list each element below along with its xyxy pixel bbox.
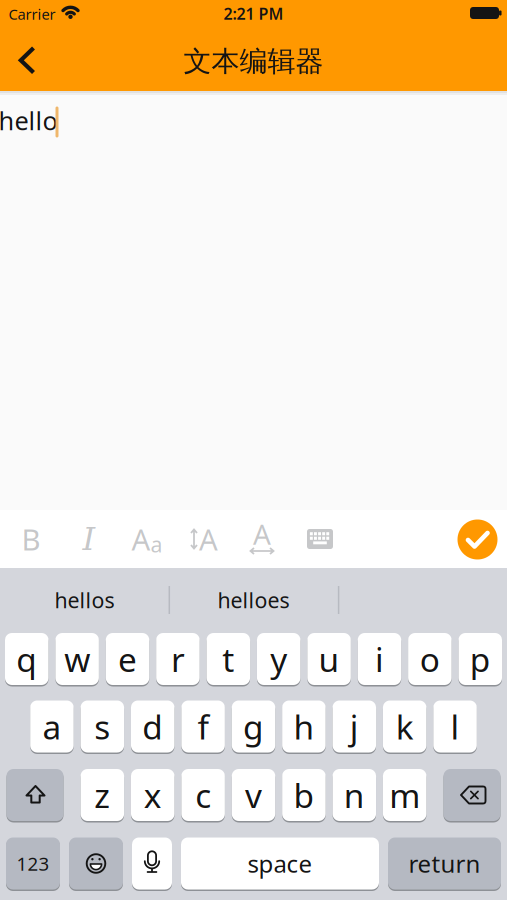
staticText: j [350,704,359,749]
staticText: A [199,519,218,558]
staticText: 文本编辑器 [183,44,323,79]
button[interactable]: c [181,769,225,821]
button[interactable]: x [131,769,174,821]
button[interactable]: f [181,700,225,752]
staticText: return [408,848,480,879]
staticText: A [131,519,150,558]
button[interactable] [132,837,172,889]
button[interactable]: A [125,515,169,563]
button[interactable]: d [131,700,174,752]
staticText: y [270,637,287,681]
staticText: s [94,704,110,749]
staticText: e [118,637,137,681]
button[interactable]: e [106,633,149,685]
staticText: v [245,773,262,817]
button[interactable]: b [282,769,326,821]
button[interactable]: m [383,769,426,821]
staticText: l [451,704,460,749]
staticText: h [293,704,314,749]
button[interactable]: A [184,515,224,563]
button[interactable]: I [69,515,109,563]
staticText: I [82,520,95,558]
staticText: x [144,773,162,817]
button[interactable]: r [156,633,200,685]
button[interactable]: g [232,700,275,752]
button[interactable]: s [81,700,124,752]
staticText: B [21,519,40,558]
staticText: hello [0,104,57,137]
button[interactable]: l [433,700,477,752]
button[interactable]: y [257,633,300,685]
button[interactable] [6,769,63,821]
button[interactable] [69,837,123,889]
staticText: k [396,704,414,749]
button[interactable]: t [207,633,250,685]
button[interactable] [457,519,497,559]
button[interactable]: p [458,633,502,685]
staticText: d [142,704,163,749]
button[interactable]: z [81,769,124,821]
staticText: b [293,773,314,817]
button[interactable]: B [11,515,51,563]
staticText: hellos [54,586,114,614]
staticText: A [253,515,271,553]
staticText: w [64,637,90,681]
staticText: p [470,637,491,681]
button[interactable] [443,769,500,821]
staticText: f [198,704,209,749]
button[interactable]: w [55,633,99,685]
staticText: Carrier [8,4,55,24]
staticText: q [16,637,37,681]
button[interactable]: u [307,633,351,685]
staticText: a [42,704,61,749]
button[interactable]: return [388,837,501,889]
button[interactable]: a [30,700,74,752]
button[interactable]: h [282,700,326,752]
staticText: 2:21 PM [223,3,283,24]
button[interactable]: space [181,837,379,889]
button[interactable]: v [232,769,275,821]
button[interactable]: k [383,700,426,752]
staticText: space [247,848,312,879]
staticText: m [389,773,420,817]
staticText: a [150,530,162,558]
staticText: i [375,637,384,681]
staticText: c [195,773,211,817]
button[interactable]: q [5,633,48,685]
button[interactable]: hellos [4,572,164,628]
button[interactable] [300,515,340,563]
button[interactable]: o [408,633,452,685]
staticText: t [222,637,234,681]
staticText: helloes [217,586,289,614]
button[interactable]: n [332,769,376,821]
button[interactable]: A [242,515,282,563]
staticText: n [344,773,365,817]
staticText: o [420,637,440,681]
staticText: 123 [16,851,49,876]
staticText: g [243,704,264,749]
button[interactable]: j [332,700,376,752]
staticText: r [171,637,185,681]
staticText: u [319,637,340,681]
button[interactable]: 123 [6,837,60,889]
button[interactable]: helloes [173,572,333,628]
button[interactable]: i [358,633,401,685]
button[interactable] [7,38,51,82]
staticText: z [94,773,110,817]
